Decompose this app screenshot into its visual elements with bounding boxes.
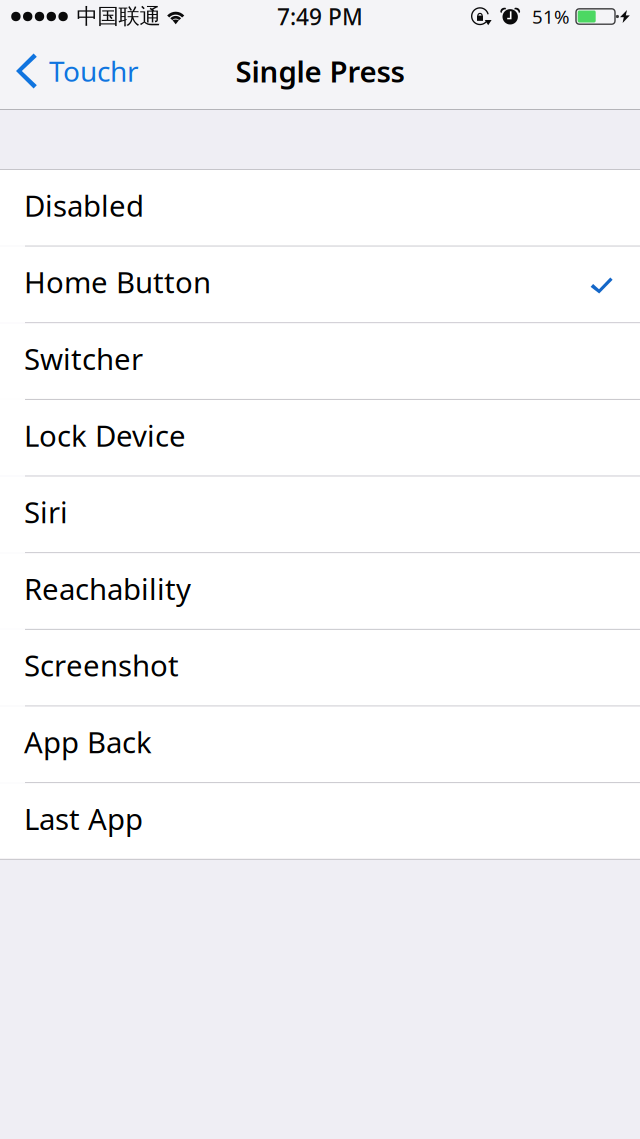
staticText: Last App: [24, 799, 143, 838]
button[interactable]: Lock Device: [0, 400, 640, 476]
staticText: Touchr: [49, 52, 139, 90]
staticText: Disabled: [24, 186, 144, 225]
staticText: Single Press: [235, 51, 404, 90]
staticText: Siri: [24, 492, 68, 531]
button[interactable]: Home Button: [0, 247, 640, 322]
button[interactable]: Screenshot: [0, 630, 640, 706]
button[interactable]: Disabled: [0, 170, 640, 246]
button[interactable]: Reachability: [0, 553, 640, 629]
staticText: App Back: [24, 722, 152, 761]
button[interactable]: Last App: [0, 783, 640, 859]
staticText: 中国联通: [76, 3, 160, 30]
button[interactable]: App Back: [0, 706, 640, 782]
staticText: Home Button: [24, 262, 211, 301]
button[interactable]: Back to Touchr: [0, 33, 151, 109]
button[interactable]: Siri: [0, 477, 640, 552]
staticText: 51%: [532, 4, 570, 29]
staticText: 7:49 PM: [277, 1, 363, 31]
button[interactable]: Switcher: [0, 323, 640, 399]
staticText: Lock Device: [24, 416, 186, 455]
staticText: Screenshot: [24, 646, 179, 685]
staticText: Switcher: [24, 339, 143, 378]
staticText: Reachability: [24, 569, 191, 608]
